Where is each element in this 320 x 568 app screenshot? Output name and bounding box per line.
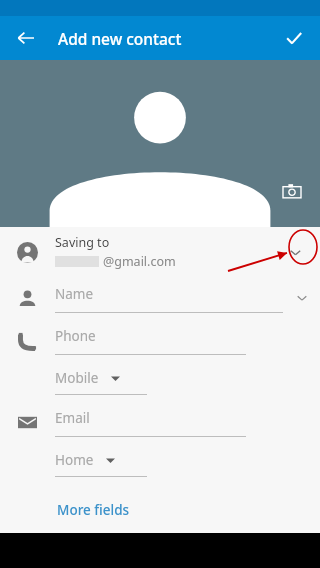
button[interactable]: Saving to — [0, 227, 320, 277]
button[interactable]: Save contact — [276, 20, 312, 56]
staticText: More fields — [57, 501, 130, 519]
button[interactable]: Back — [8, 20, 44, 56]
staticText: @gmail.com — [103, 253, 176, 270]
button[interactable]: Mobile — [0, 361, 320, 401]
button[interactable]: Email — [0, 401, 320, 443]
staticText: Phone — [55, 327, 96, 345]
button[interactable]: Phone — [0, 319, 320, 361]
button[interactable]: Choose account — [280, 237, 310, 267]
button[interactable]: Home — [0, 443, 320, 483]
staticText: Saving to — [55, 234, 110, 251]
staticText: Home — [55, 451, 94, 469]
staticText: Mobile — [55, 369, 99, 387]
button[interactable]: Expand name fields — [287, 283, 317, 313]
button[interactable]: More fields — [55, 495, 132, 525]
staticText: Add new contact — [58, 28, 182, 49]
button[interactable]: Change photo — [278, 177, 306, 205]
button[interactable]: Name — [0, 277, 320, 319]
button[interactable]: Add contact photo — [0, 60, 320, 227]
staticText: Name — [55, 285, 94, 303]
staticText: Email — [55, 409, 90, 427]
